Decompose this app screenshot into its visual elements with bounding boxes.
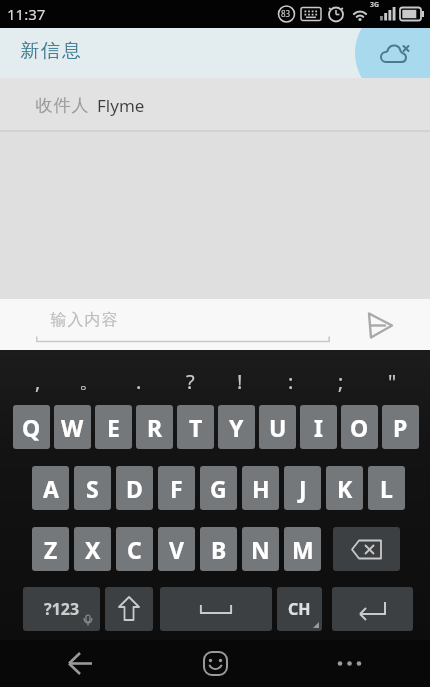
staticText: . bbox=[136, 368, 142, 395]
button[interactable]: U bbox=[259, 405, 296, 449]
staticText: S bbox=[86, 473, 99, 504]
button[interactable]: D bbox=[116, 466, 153, 510]
button[interactable] bbox=[360, 28, 430, 78]
button[interactable]: : bbox=[266, 357, 316, 405]
button[interactable]: W bbox=[54, 405, 91, 449]
button[interactable] bbox=[325, 644, 375, 684]
button[interactable]: A bbox=[32, 466, 69, 510]
staticText: X bbox=[85, 534, 101, 565]
button[interactable]: Z bbox=[32, 527, 69, 571]
button[interactable]: B bbox=[200, 527, 237, 571]
button[interactable]: L bbox=[368, 466, 405, 510]
button[interactable]: G bbox=[200, 466, 237, 510]
button[interactable] bbox=[195, 644, 235, 684]
button[interactable]: 。 bbox=[64, 357, 114, 405]
button[interactable]: " bbox=[367, 357, 417, 405]
button[interactable]: N bbox=[242, 527, 279, 571]
staticText: 3G bbox=[370, 0, 380, 10]
staticText: A bbox=[43, 473, 59, 504]
button[interactable]: C bbox=[116, 527, 153, 571]
staticText: U bbox=[269, 412, 287, 443]
button[interactable]: R bbox=[136, 405, 173, 449]
staticText: 新信息 bbox=[19, 39, 82, 63]
button[interactable]: Q bbox=[13, 405, 50, 449]
button[interactable]: J bbox=[284, 466, 321, 510]
staticText: G bbox=[210, 473, 227, 504]
staticText: Q bbox=[22, 412, 41, 443]
staticText: K bbox=[337, 473, 353, 504]
staticText: T bbox=[189, 412, 203, 443]
button[interactable]: 收件人 bbox=[0, 78, 430, 132]
staticText: , bbox=[35, 368, 41, 395]
button[interactable] bbox=[333, 527, 400, 571]
staticText: H bbox=[252, 473, 270, 504]
staticText: 输入内容 bbox=[50, 310, 118, 330]
staticText: CH bbox=[288, 598, 311, 620]
button[interactable]: V bbox=[158, 527, 195, 571]
staticText: L bbox=[380, 473, 393, 504]
button[interactable] bbox=[332, 587, 413, 631]
button[interactable] bbox=[105, 587, 153, 631]
staticText: M bbox=[292, 534, 314, 565]
staticText: N bbox=[251, 534, 270, 565]
button[interactable]: H bbox=[242, 466, 279, 510]
button[interactable]: P bbox=[382, 405, 419, 449]
button[interactable]: 输入内容 bbox=[0, 299, 430, 350]
button[interactable]: , bbox=[13, 357, 63, 405]
button[interactable]: I bbox=[300, 405, 337, 449]
staticText: Y bbox=[229, 412, 244, 443]
staticText: ! bbox=[237, 368, 243, 395]
button[interactable]: F bbox=[158, 466, 195, 510]
staticText: P bbox=[393, 412, 408, 443]
staticText: C bbox=[127, 534, 142, 565]
staticText: B bbox=[211, 534, 227, 565]
button[interactable]: ; bbox=[316, 357, 366, 405]
button[interactable]: CH bbox=[277, 587, 322, 631]
staticText: ; bbox=[338, 368, 344, 395]
button[interactable]: ! bbox=[215, 357, 265, 405]
staticText: : bbox=[288, 368, 294, 395]
button[interactable]: X bbox=[74, 527, 111, 571]
staticText: W bbox=[61, 412, 84, 443]
staticText: ?123 bbox=[44, 598, 80, 620]
button[interactable]: E bbox=[95, 405, 132, 449]
button[interactable]: T bbox=[177, 405, 214, 449]
staticText: Z bbox=[44, 534, 58, 565]
staticText: 11:37 bbox=[7, 4, 46, 24]
staticText: J bbox=[299, 473, 307, 504]
staticText: D bbox=[126, 473, 143, 504]
staticText: ? bbox=[186, 368, 195, 395]
button[interactable]: K bbox=[326, 466, 363, 510]
button[interactable] bbox=[160, 587, 272, 631]
staticText: I bbox=[314, 412, 323, 443]
staticText: 83 bbox=[281, 8, 291, 19]
button[interactable]: . bbox=[114, 357, 164, 405]
staticText: " bbox=[388, 368, 397, 395]
button[interactable]: O bbox=[341, 405, 378, 449]
staticText: R bbox=[147, 412, 163, 443]
button[interactable]: ?123 bbox=[23, 587, 100, 631]
staticText: O bbox=[350, 412, 369, 443]
button[interactable] bbox=[55, 644, 105, 684]
staticText: E bbox=[107, 412, 120, 443]
button[interactable]: Y bbox=[218, 405, 255, 449]
staticText: 收件人 bbox=[35, 95, 89, 116]
staticText: V bbox=[169, 534, 184, 565]
button[interactable]: ? bbox=[165, 357, 215, 405]
button[interactable]: M bbox=[284, 527, 321, 571]
staticText: F bbox=[170, 473, 183, 504]
staticText: 。 bbox=[79, 369, 99, 394]
staticText: Flyme bbox=[97, 94, 145, 117]
button[interactable]: S bbox=[74, 466, 111, 510]
